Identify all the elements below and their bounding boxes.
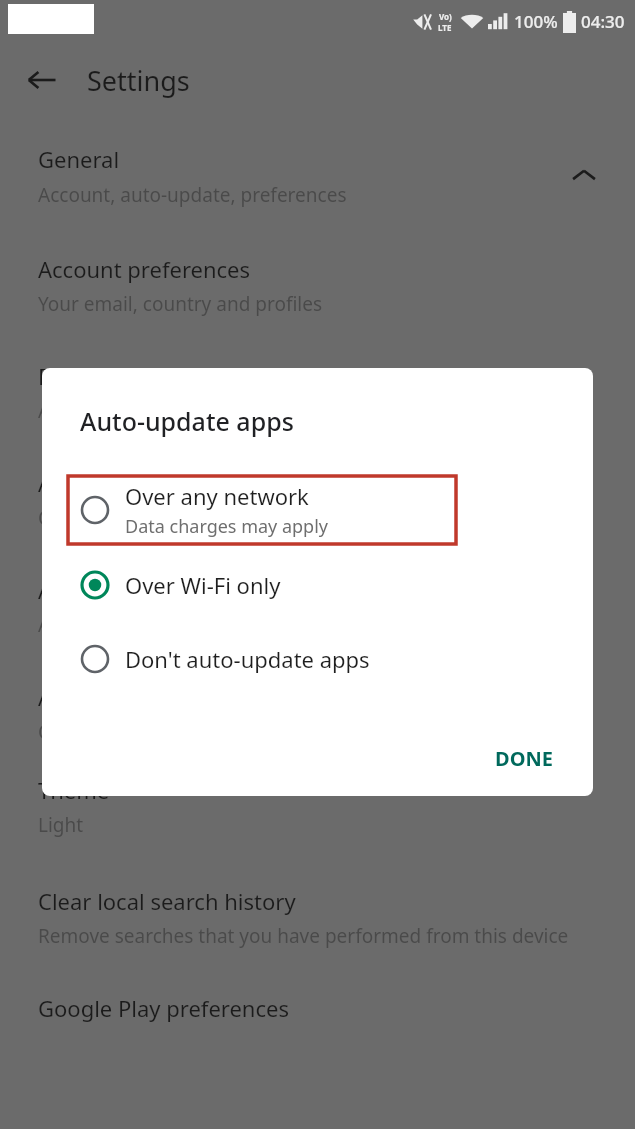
staticText: Download preferences [38,361,272,391]
staticText: DONE [495,745,553,772]
staticText: Auto-update apps [38,468,223,498]
staticText: 100% [514,10,558,33]
button[interactable]: Clear local search history [0,886,635,949]
staticText: Data charges may apply [125,514,329,539]
staticText: Over Wi-Fi only [38,505,173,531]
staticText: Account, auto-update, preferences [38,182,347,208]
button[interactable]: Auto-update apps [0,468,635,531]
staticText: Settings [87,62,190,99]
button[interactable]: Back [18,56,66,104]
button[interactable]: Over Wi-Fi only [42,554,593,616]
staticText: Light [38,812,84,838]
staticText: Add to Home screen [38,612,220,638]
button[interactable]: Auto-add widgets [0,575,635,638]
staticText: Don't auto-update apps [125,644,370,674]
staticText: Clear local search history [38,886,296,916]
staticText: Theme [38,775,110,805]
staticText: 04:30 [581,10,625,33]
button[interactable]: Theme [0,775,635,838]
staticText: Auto-update apps [80,404,294,438]
staticText: LTE [438,22,452,33]
button[interactable]: General [0,144,635,208]
button[interactable]: Download preferences [0,361,635,424]
staticText: Vo) [439,11,452,22]
staticText: Your email, country and profiles [38,291,323,317]
button[interactable]: App download preference [0,682,635,745]
staticText: Ask every time [38,398,168,424]
button[interactable]: DONE [481,735,567,782]
staticText: Account preferences [38,254,251,284]
staticText: App download preference [38,682,305,712]
staticText: Over Wi-Fi only [125,570,281,600]
button[interactable]: Over any network [42,472,593,548]
staticText: Remove searches that you have performed … [38,923,569,949]
staticText: Over any network [38,719,197,745]
button[interactable]: Don't auto-update apps [42,628,593,690]
staticText: Google Play preferences [38,993,289,1023]
staticText: Auto-add widgets [38,575,221,605]
staticText: Over any network [125,481,309,511]
button[interactable]: Account preferences [0,254,635,317]
staticText: General [38,144,120,174]
